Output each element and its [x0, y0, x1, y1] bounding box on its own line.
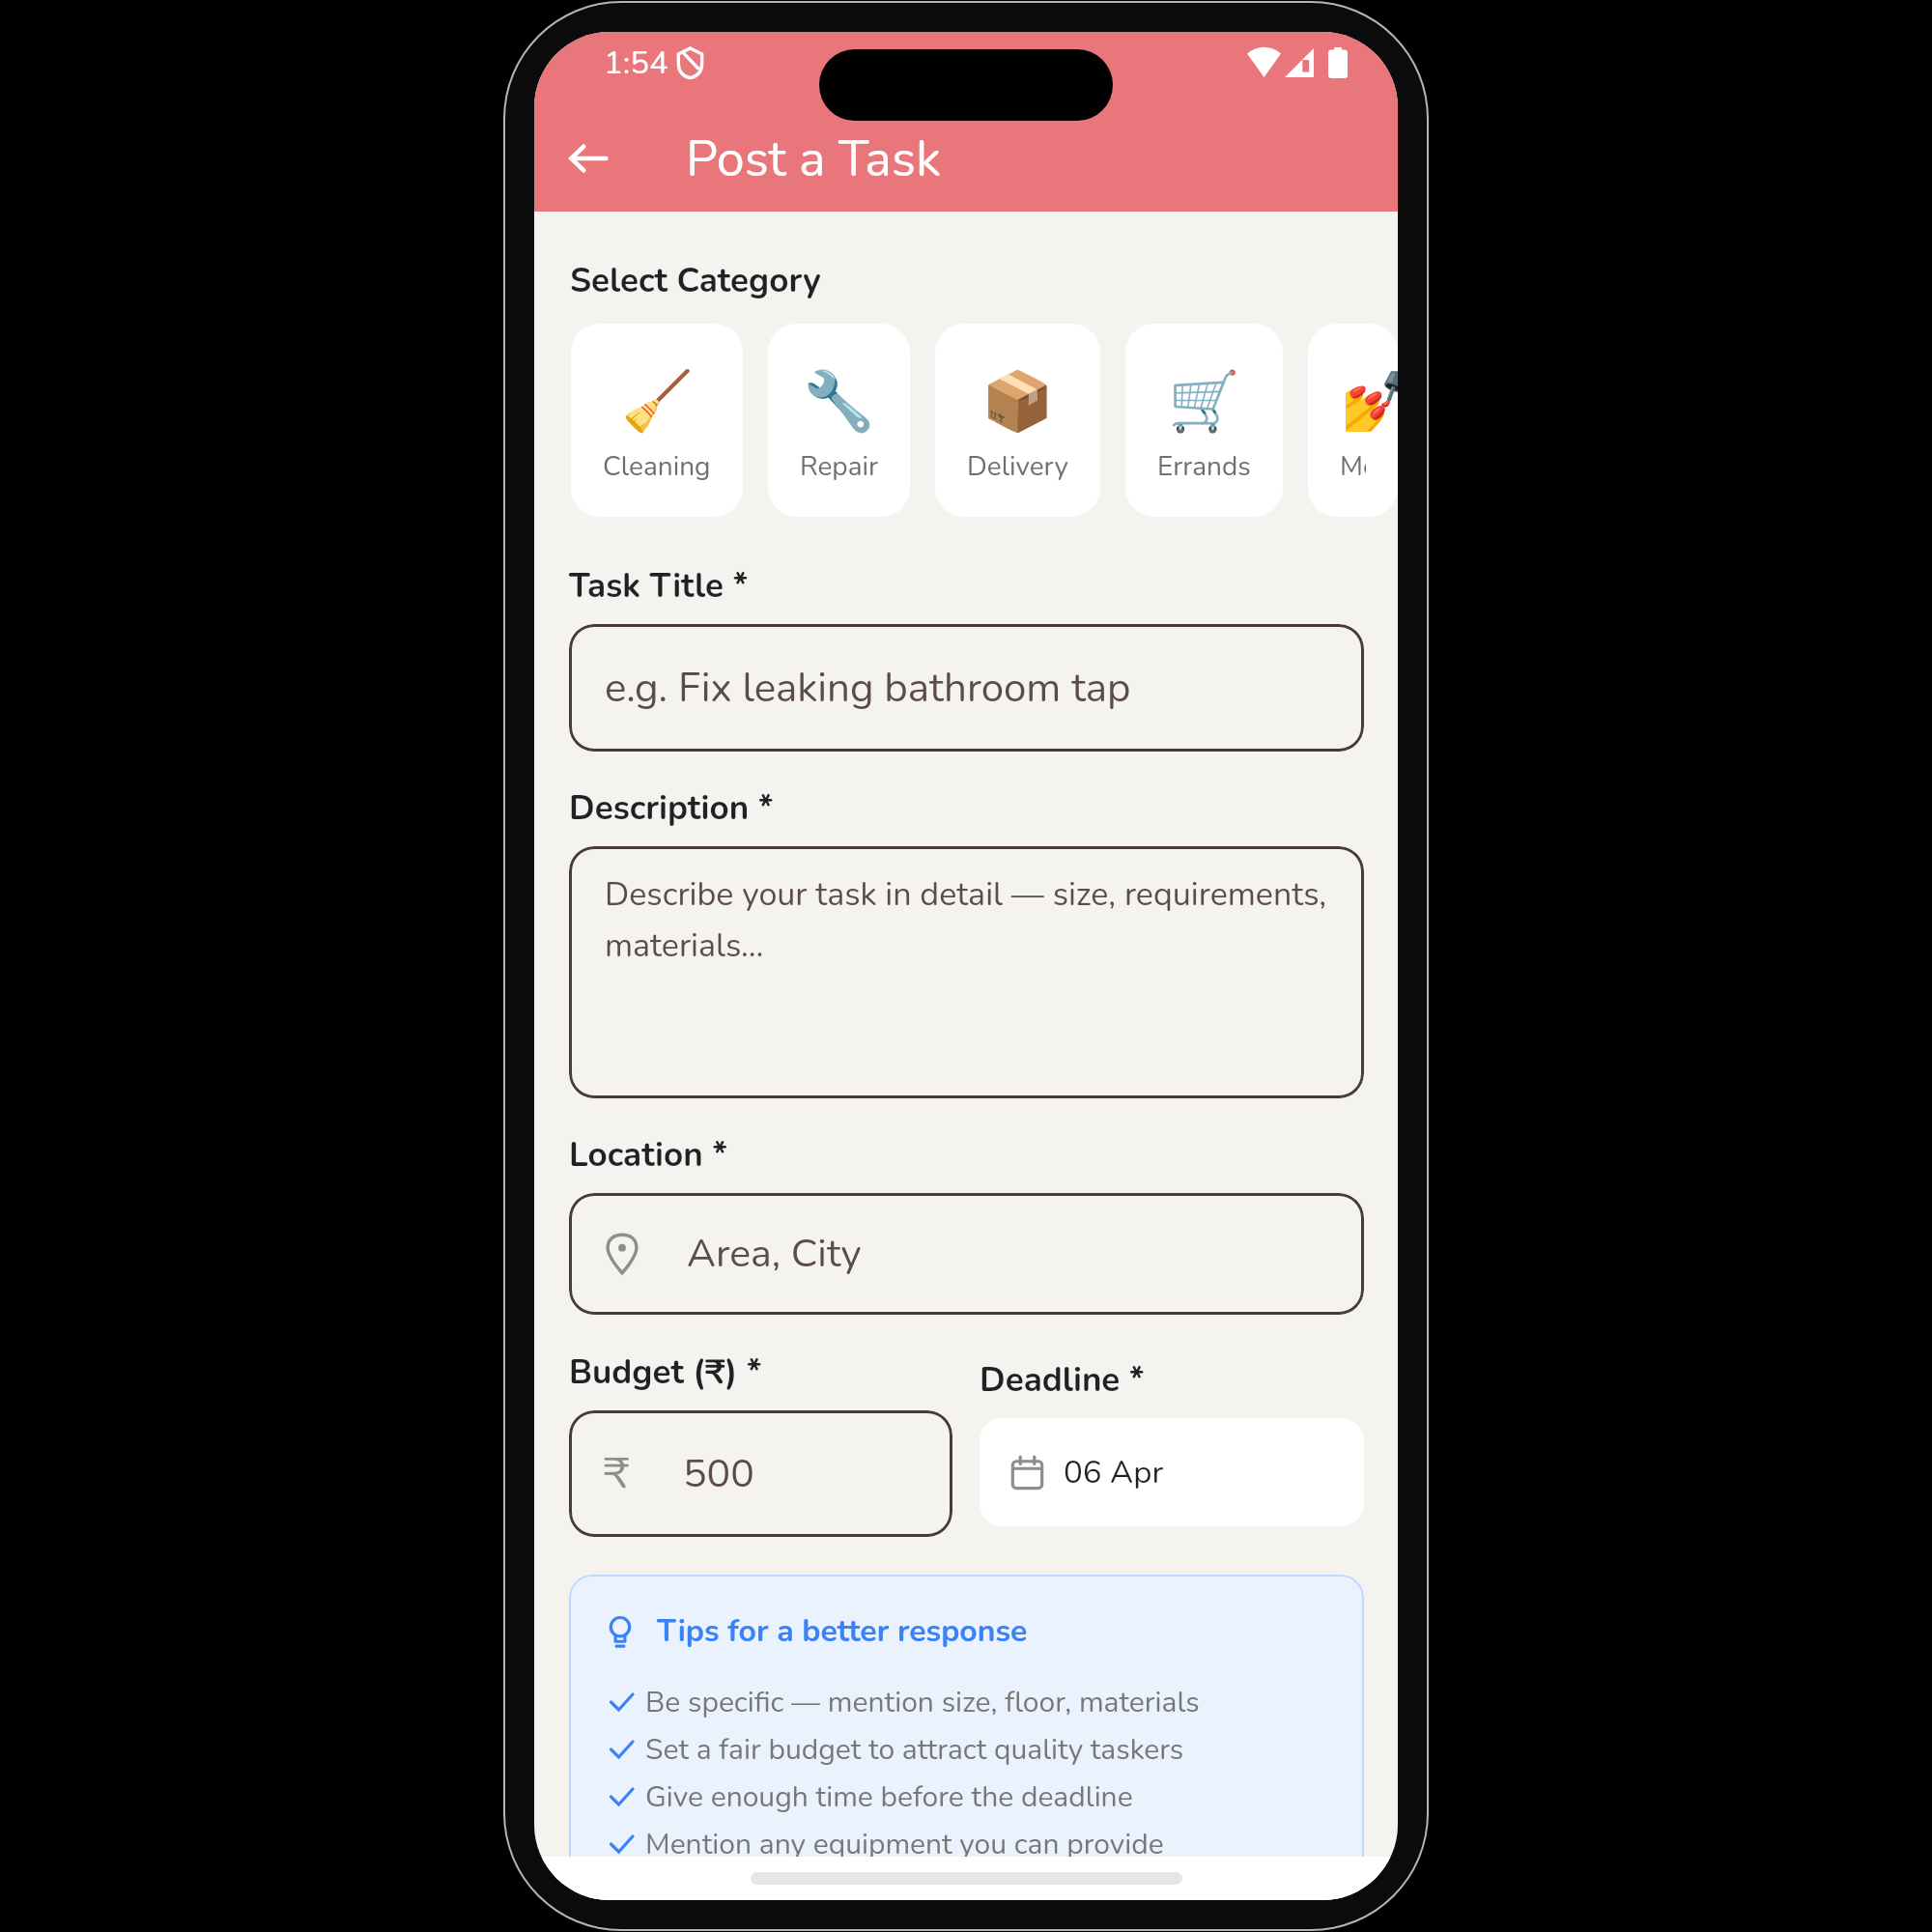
staticText: 06 Apr [1064, 1451, 1164, 1494]
button[interactable]: 🔧 [768, 324, 910, 517]
staticText: Delivery [967, 448, 1068, 485]
staticText: Give enough time before the deadline [645, 1777, 1133, 1817]
staticText: Describe your task in detail — size, req… [605, 872, 1352, 968]
staticText: Errands [1157, 448, 1251, 485]
button[interactable]: Back [548, 118, 629, 199]
button[interactable]: 06 Apr [980, 1418, 1364, 1526]
button[interactable]: Area, City [569, 1193, 1364, 1315]
staticText: Task Title * [569, 563, 749, 610]
button[interactable]: e.g. Fix leaking bathroom tap [569, 624, 1364, 752]
staticText: Description * [569, 785, 774, 832]
staticText: Mention any equipment you can provide [645, 1825, 1164, 1864]
staticText: 1:54 [604, 42, 668, 85]
staticText: 🧹 [621, 367, 694, 435]
staticText: 📦 [981, 367, 1054, 435]
button[interactable]: Describe your task in detail — size, req… [569, 846, 1364, 1098]
staticText: 🔧 [803, 367, 875, 435]
staticText: Select Category [570, 258, 821, 304]
staticText: Deadline * [980, 1357, 1145, 1404]
staticText: Set a fair budget to attract quality tas… [645, 1730, 1184, 1770]
staticText: ₹ [604, 1445, 630, 1503]
staticText: Repair [800, 448, 878, 485]
button[interactable]: ₹ [569, 1410, 952, 1537]
staticText: Area, City [687, 1227, 862, 1281]
staticText: Tips for a better response [657, 1610, 1028, 1653]
staticText: Location * [569, 1132, 728, 1179]
button[interactable]: 📦 [935, 324, 1100, 517]
button[interactable]: 💅 [1308, 324, 1398, 517]
staticText: Cleaning [603, 448, 711, 485]
staticText: e.g. Fix leaking bathroom tap [605, 661, 1131, 716]
staticText: Meds [1340, 448, 1366, 485]
staticText: Post a Task [686, 125, 941, 193]
button[interactable]: 🛒 [1125, 324, 1283, 517]
staticText: 🛒 [1168, 367, 1240, 435]
button[interactable]: 🧹 [571, 324, 743, 517]
staticText: Be specific — mention size, floor, mater… [645, 1683, 1200, 1722]
staticText: 500 [683, 1447, 754, 1501]
staticText: Budget (₹) * [569, 1350, 762, 1396]
staticText: 💅 [1340, 367, 1366, 435]
